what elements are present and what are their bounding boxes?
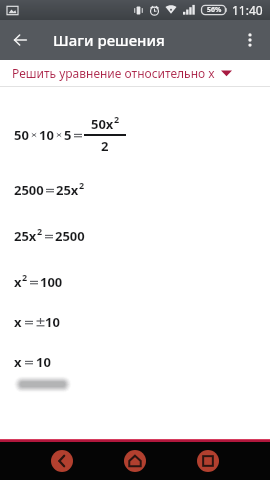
staticText: x [14,313,22,331]
staticText: x [14,353,22,371]
staticText: 10 [36,353,51,371]
staticText: 11:40 [232,2,263,18]
staticText: 10 [39,126,54,144]
staticText: 56% [207,5,222,15]
staticText: 10 [45,313,60,331]
staticText: Шаги решения [53,30,165,50]
staticText: 5 [64,126,72,144]
staticText: 2 [101,137,109,155]
staticText: 2 [79,179,85,191]
staticText: 100 [40,273,63,291]
button[interactable]: Recents [197,450,219,472]
staticText: 25x [14,227,37,245]
staticText: x [14,273,22,291]
button[interactable]: Решить уравнение относительно x [0,60,270,86]
staticText: 25x [56,181,79,199]
button[interactable]: More options [230,20,270,60]
staticText: 2 [22,271,28,283]
staticText: 2 [114,113,120,125]
staticText: 50x [91,115,114,133]
staticText: 2500 [55,227,85,245]
staticText: Решить уравнение относительно x [12,65,215,81]
button[interactable]: Back [51,450,73,472]
staticText: 50 [14,126,29,144]
staticText: 2500 [14,181,44,199]
staticText: 2 [37,225,43,237]
button[interactable]: Home [124,450,146,472]
button[interactable]: Back [0,20,40,60]
